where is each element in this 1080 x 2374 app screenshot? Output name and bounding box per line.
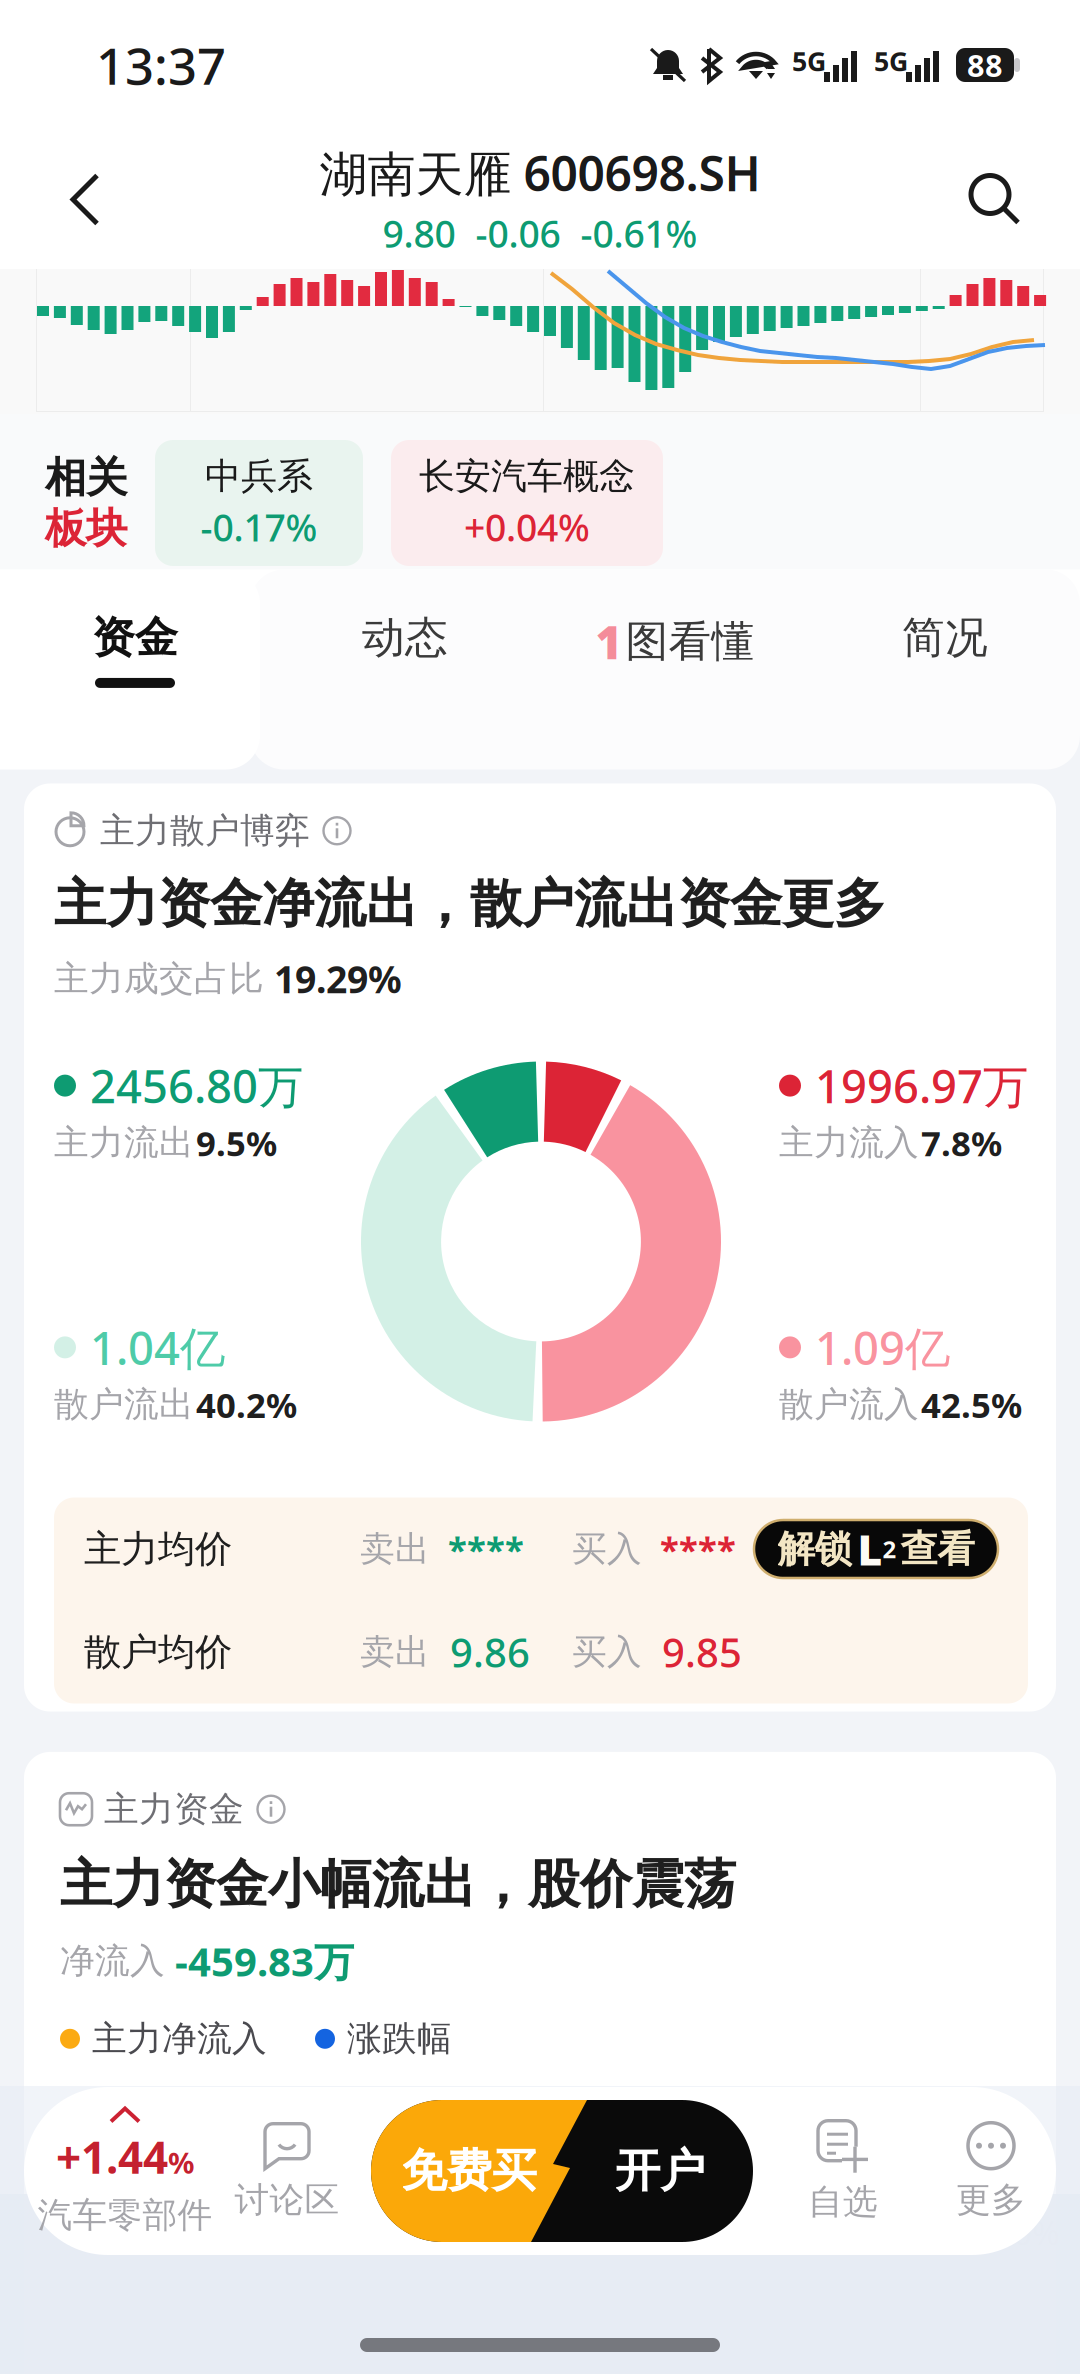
staticText: 主力资金净流出，散户流出资金更多 (54, 872, 886, 936)
button[interactable]: 免费买 (371, 2100, 753, 2242)
button[interactable]: 中兵系 (155, 440, 363, 566)
staticText: -0.17% (200, 502, 317, 552)
staticText: 9.85 (642, 1625, 742, 1679)
staticText: 9.86 (430, 1625, 530, 1679)
staticText: 自选 (808, 2181, 878, 2223)
staticText: 讨论区 (234, 2179, 339, 2221)
staticText: 长安汽车概念 (419, 454, 635, 498)
staticText: 卖出 (360, 1528, 430, 1570)
staticText: 查看 (900, 1526, 974, 1572)
staticText: 2456.80万 (90, 1055, 303, 1116)
staticText: 开户 (615, 2143, 705, 2199)
staticText: 散户均价 (84, 1629, 232, 1675)
staticText: 主力均价 (84, 1526, 232, 1572)
button[interactable]: Back (30, 144, 140, 254)
staticText: 图看懂 (625, 615, 754, 668)
button[interactable]: Search (940, 144, 1050, 254)
staticText: +0.04% (464, 502, 590, 552)
staticText: 主力散户博弈 (100, 809, 310, 852)
staticText: 0.00% (966, 2210, 1060, 2254)
staticText: -288.00万 (60, 2210, 208, 2254)
staticText: 5G (792, 43, 826, 79)
staticText: 9.80 -0.06 -0.61% (382, 209, 697, 258)
staticText: 简况 (902, 611, 988, 664)
button[interactable]: 解锁 (754, 1520, 998, 1578)
staticText: 免费买 (401, 2143, 536, 2199)
staticText: 主力流入 (779, 1121, 919, 1164)
staticText: 88 (967, 45, 1003, 85)
staticText: 主力净流入 (92, 2017, 267, 2060)
staticText: 相关 (45, 452, 127, 503)
staticText: 2 (882, 1533, 896, 1565)
button[interactable]: 1 (540, 569, 810, 724)
staticText: -459.83万 (175, 1934, 354, 1987)
staticText: 9.5% (196, 1120, 277, 1166)
staticText: 主力资金 (104, 1788, 244, 1830)
staticText: 主力流出 (54, 1121, 194, 1164)
staticText: +1.44 (56, 2127, 168, 2186)
staticText: 湖南天雁 600698.SH (319, 141, 760, 204)
staticText: 5G (874, 43, 908, 79)
button[interactable]: +1.44 (33, 2105, 217, 2236)
staticText: % (168, 2143, 194, 2182)
button[interactable]: 更多 (935, 2121, 1047, 2221)
staticText: 解锁 (777, 1526, 851, 1572)
staticText: **** (430, 1526, 524, 1572)
staticText: 涨跌幅 (347, 2017, 452, 2060)
staticText: L (857, 1521, 882, 1577)
staticText: 更多 (956, 2179, 1026, 2221)
staticText: 主力成交占比 (54, 957, 264, 1000)
button[interactable]: 自选 (787, 2119, 899, 2223)
staticText: 净流入 (60, 1940, 165, 1982)
staticText: 1.04亿 (90, 1317, 225, 1377)
staticText: 板块 (45, 503, 127, 554)
staticText: **** (642, 1526, 736, 1572)
button[interactable]: 长安汽车概念 (391, 440, 663, 566)
staticText: 中兵系 (205, 454, 313, 498)
button[interactable]: 动态 (270, 569, 540, 724)
staticText: 13:37 (96, 31, 226, 99)
staticText: 散户流出 (54, 1383, 194, 1426)
staticText: 汽车零部件 (37, 2194, 212, 2236)
staticText: 买入 (572, 1631, 642, 1673)
staticText: 42.5% (921, 1381, 1022, 1427)
staticText: 买入 (572, 1528, 642, 1570)
staticText: 40.2% (196, 1381, 297, 1427)
button[interactable]: 简况 (810, 569, 1080, 724)
button[interactable]: 讨论区 (231, 2121, 343, 2221)
staticText: 卖出 (360, 1631, 430, 1673)
staticText: 7.8% (921, 1120, 1002, 1166)
staticText: 10:00 (544, 2210, 629, 2254)
staticText: 资金 (92, 611, 178, 664)
staticText: 主力资金小幅流出，股价震荡 (60, 1852, 736, 1916)
staticText: 散户流入 (779, 1383, 919, 1426)
staticText: 1.09亿 (815, 1317, 950, 1377)
staticText: 动态 (362, 611, 448, 664)
staticText: 1 (595, 611, 622, 672)
staticText: 19.29% (274, 954, 402, 1003)
button[interactable]: 资金 (0, 569, 270, 724)
staticText: 1996.97万 (815, 1055, 1028, 1116)
